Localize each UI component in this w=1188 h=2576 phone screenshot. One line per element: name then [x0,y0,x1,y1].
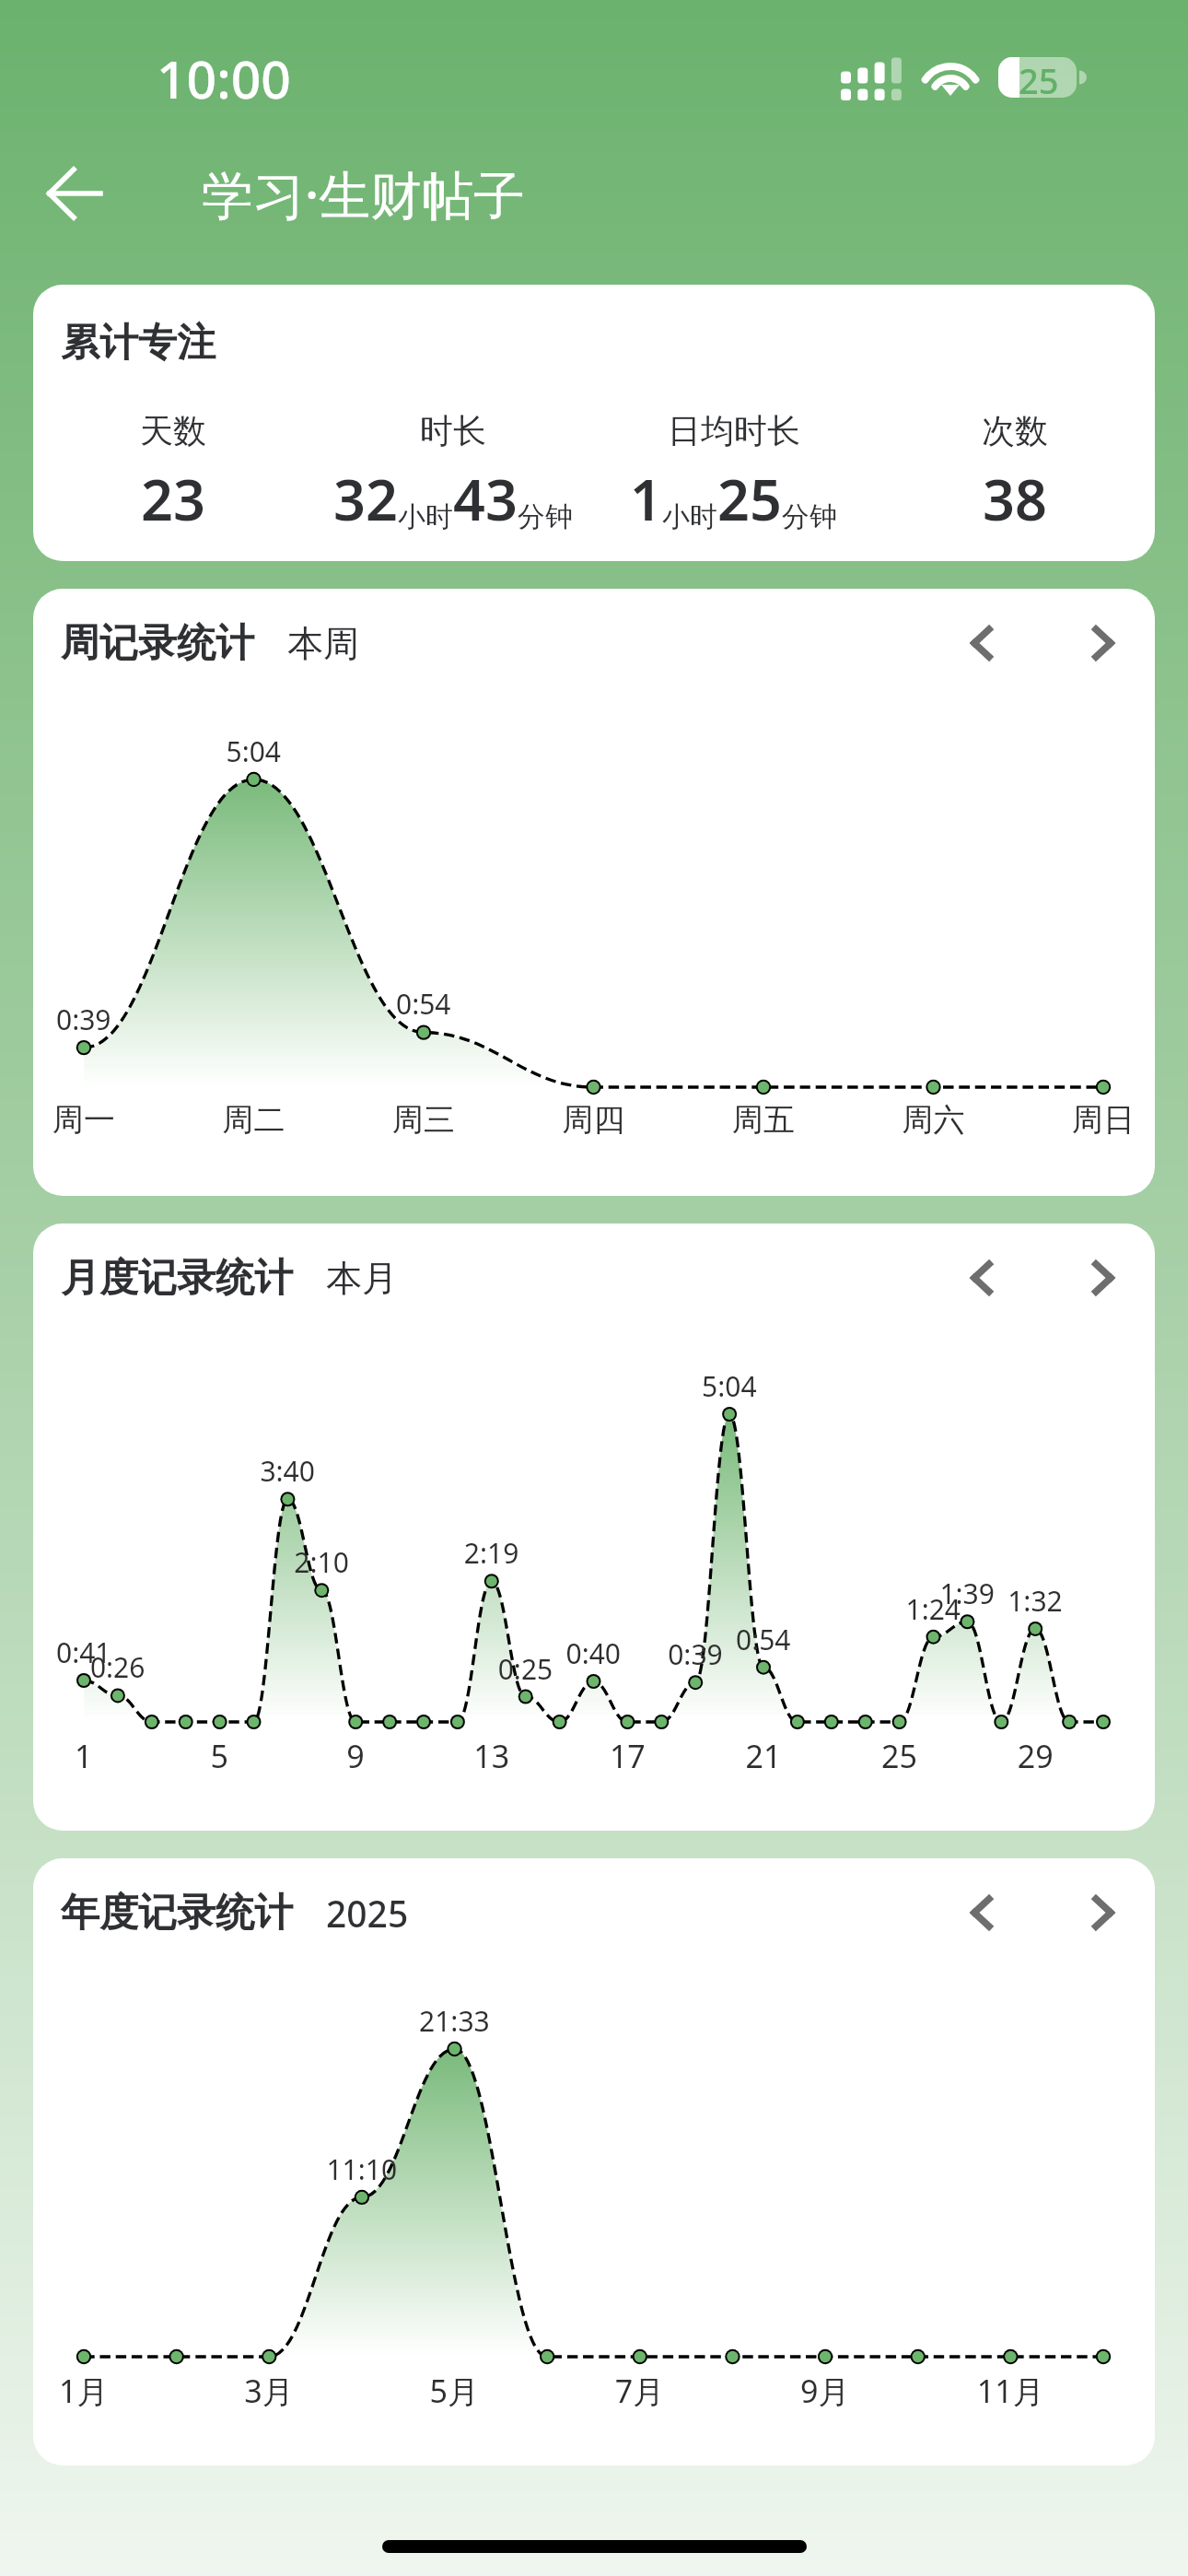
staticText: 年度记录统计 [61,1889,293,1938]
button[interactable]: 累计专注 [33,285,1155,561]
staticText: 25 [717,461,782,537]
button[interactable]: Previous [949,1246,1014,1310]
staticText: 本周 [287,621,359,666]
staticText: 日均时长 [668,410,800,451]
staticText: 次数 [982,410,1048,451]
staticText: 时长 [420,410,486,451]
button[interactable]: Next [1071,1880,1136,1945]
staticText: 月度记录统计 [61,1254,293,1303]
button[interactable]: 年度记录统计 [33,1858,1155,2465]
staticText: 本月 [326,1256,398,1301]
button[interactable]: Previous [949,1880,1014,1945]
staticText: 2025 [326,1889,409,1938]
staticText: 1 [630,461,662,537]
button[interactable]: Next [1071,611,1136,675]
staticText: 38 [983,461,1047,537]
staticText: 32 [333,461,398,537]
staticText: 天数 [140,410,206,451]
staticText: 10:00 [157,42,291,114]
staticText: 25 [1019,56,1059,97]
staticText: 23 [141,461,205,537]
button[interactable]: 周记录统计 [33,589,1155,1196]
button[interactable]: Next [1071,1246,1136,1310]
button[interactable]: Previous [949,611,1014,675]
staticText: 小时 [662,499,717,534]
staticText: 学习·生财帖子 [202,158,526,228]
button[interactable]: 月度记录统计 [33,1224,1155,1831]
button[interactable]: Back [16,140,134,247]
staticText: 累计专注 [61,319,215,368]
staticText: 小时 [398,499,453,534]
staticText: 周记录统计 [61,619,254,668]
staticText: 分钟 [518,499,573,534]
staticText: 分钟 [782,499,837,534]
staticText: 43 [453,461,518,537]
